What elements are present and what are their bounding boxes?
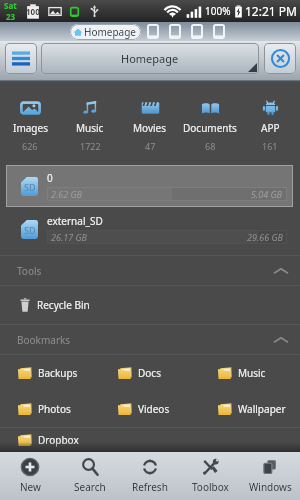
staticText: Docs: [138, 366, 161, 380]
button[interactable]: Windows: [240, 452, 300, 500]
button[interactable]: [100, 428, 200, 452]
staticText: 47: [145, 140, 156, 150]
staticText: 1722: [80, 140, 101, 150]
staticText: SD: [24, 181, 36, 193]
staticText: Backups: [38, 366, 78, 380]
staticText: Recycle Bin: [37, 298, 90, 312]
button[interactable]: Backups: [0, 355, 100, 391]
button[interactable]: New: [0, 452, 60, 500]
staticText: Wallpaper: [238, 402, 286, 416]
button[interactable]: Close: [264, 43, 296, 74]
staticText: Sat: [4, 0, 17, 11]
button[interactable]: Tab: [190, 24, 204, 39]
button[interactable]: Tab: [212, 24, 226, 39]
button[interactable]: Videos: [100, 391, 200, 427]
staticText: 100: [26, 6, 40, 17]
staticText: Music: [238, 366, 266, 380]
staticText: 626: [22, 140, 38, 150]
staticText: Bookmarks: [17, 333, 71, 347]
button[interactable]: [200, 428, 300, 452]
button[interactable]: Homepage: [70, 24, 141, 40]
staticText: Documents: [183, 121, 237, 135]
button[interactable]: Music: [200, 355, 300, 391]
button[interactable]: Tab: [146, 24, 160, 39]
staticText: Movies: [133, 121, 167, 135]
button[interactable]: Documents: [180, 100, 240, 150]
button[interactable]: Menu: [5, 43, 37, 74]
button[interactable]: Music: [60, 100, 120, 150]
staticText: 12:21 PM: [245, 3, 297, 19]
staticText: 26.17 GB: [51, 231, 87, 243]
staticText: Toolbox: [192, 480, 229, 494]
staticText: Tools: [17, 264, 42, 278]
staticText: New: [20, 480, 41, 494]
button[interactable]: SD: [6, 208, 293, 250]
staticText: 161: [262, 140, 278, 150]
staticText: Homepage: [84, 25, 136, 39]
button[interactable]: Photos: [0, 391, 100, 427]
staticText: Dropbox: [38, 433, 79, 447]
staticText: SD: [24, 224, 36, 236]
button[interactable]: Docs: [100, 355, 200, 391]
button[interactable]: APP: [240, 100, 300, 150]
staticText: Photos: [38, 402, 71, 416]
staticText: 29.66 GB: [247, 231, 283, 243]
button[interactable]: Homepage: [41, 43, 259, 74]
staticText: APP: [261, 121, 280, 135]
staticText: Images: [13, 121, 48, 135]
button[interactable]: Images: [0, 100, 60, 150]
button[interactable]: Tools: [0, 256, 300, 285]
staticText: Search: [74, 480, 106, 494]
staticText: 2.62 GB: [51, 188, 83, 200]
button[interactable]: Wallpaper: [200, 391, 300, 427]
button[interactable]: Bookmarks: [0, 325, 300, 354]
staticText: 23: [6, 11, 16, 22]
staticText: Videos: [138, 402, 170, 416]
button[interactable]: Recycle Bin: [0, 286, 300, 324]
staticText: external_SD: [47, 214, 103, 228]
staticText: Homepage: [121, 51, 179, 66]
button[interactable]: Tab: [168, 24, 182, 39]
button[interactable]: Refresh: [120, 452, 180, 500]
button[interactable]: Dropbox: [0, 428, 100, 452]
button[interactable]: Search: [60, 452, 120, 500]
button[interactable]: Toolbox: [180, 452, 240, 500]
staticText: 100%: [205, 4, 231, 18]
staticText: 5.04 GB: [251, 188, 283, 200]
staticText: Windows: [249, 480, 292, 494]
staticText: 68: [205, 140, 216, 150]
button[interactable]: SD: [6, 165, 293, 207]
staticText: Refresh: [132, 480, 168, 494]
staticText: 0: [47, 171, 53, 185]
button[interactable]: Movies: [120, 100, 180, 150]
staticText: Music: [76, 121, 104, 135]
